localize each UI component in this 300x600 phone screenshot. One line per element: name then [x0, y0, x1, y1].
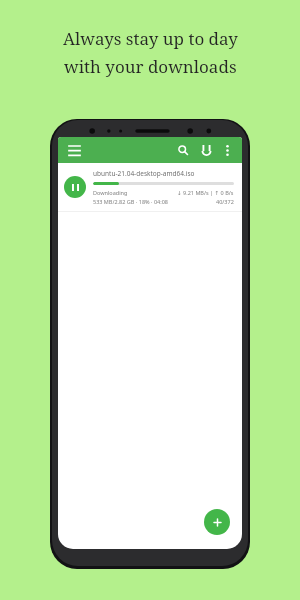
staticText: ubuntu-21.04-desktop-amd64.iso — [93, 169, 195, 178]
button[interactable]: Add magnet link — [197, 141, 215, 159]
button[interactable]: More options — [219, 142, 235, 158]
button[interactable]: Open navigation menu — [65, 141, 83, 159]
staticText: ↓ 9.21 MB/s | ↑ 0 B/s — [177, 189, 234, 196]
staticText: with your downloads — [64, 55, 237, 78]
staticText: 40/372 — [216, 198, 234, 205]
staticText: 533 MB/2.82 GB · 18% · 04:08 — [93, 198, 168, 205]
button[interactable]: Add new download — [204, 509, 230, 535]
staticText: Always stay up to day — [63, 27, 238, 50]
button[interactable]: Pause download — [64, 176, 86, 198]
button[interactable]: Pause download — [58, 163, 242, 211]
staticText: Downloading — [93, 189, 128, 196]
button[interactable]: Search — [174, 141, 192, 159]
